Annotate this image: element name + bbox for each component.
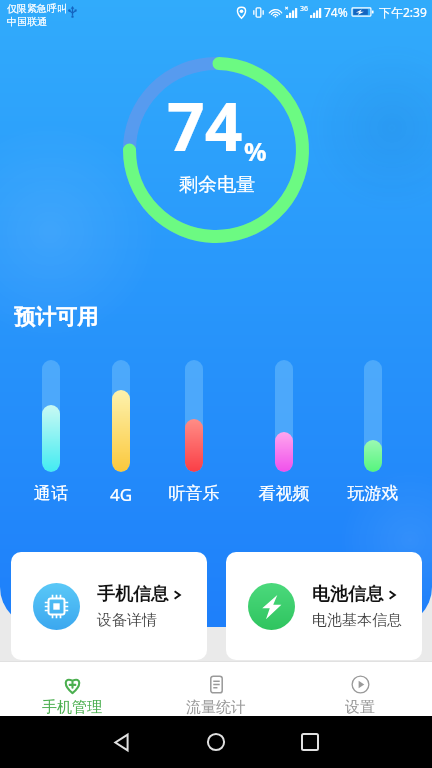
staticText: 预计可用: [14, 304, 98, 330]
staticText: 74: [167, 80, 243, 170]
button[interactable]: 手机信息: [11, 552, 207, 660]
staticText: 设备详情: [97, 611, 157, 630]
staticText: 手机管理: [42, 698, 102, 716]
button[interactable]: Recents: [292, 724, 328, 760]
staticText: 电池信息: [312, 583, 384, 606]
staticText: 剩余电量: [179, 173, 255, 197]
staticText: 74%: [324, 4, 348, 20]
staticText: 电池基本信息: [312, 611, 402, 630]
staticText: %: [244, 134, 267, 168]
staticText: 设置: [345, 698, 375, 716]
staticText: 流量统计: [186, 698, 246, 716]
button[interactable]: 电池信息: [226, 552, 422, 660]
staticText: 中国联通: [7, 15, 47, 28]
staticText: 听音乐: [154, 483, 234, 504]
button[interactable]: Home: [198, 724, 234, 760]
button[interactable]: 手机管理: [0, 662, 144, 716]
staticText: 手机信息: [97, 583, 169, 606]
button[interactable]: 设置: [288, 662, 432, 716]
staticText: 下午2:39: [379, 4, 427, 20]
staticText: 4G: [81, 483, 161, 506]
staticText: 仅限紧急呼叫: [7, 2, 67, 15]
button[interactable]: Back: [104, 724, 140, 760]
staticText: 36: [300, 4, 309, 14]
staticText: 通话: [11, 483, 91, 504]
staticText: 玩游戏: [333, 483, 413, 504]
staticText: 看视频: [244, 483, 324, 504]
button[interactable]: 流量统计: [144, 662, 288, 716]
